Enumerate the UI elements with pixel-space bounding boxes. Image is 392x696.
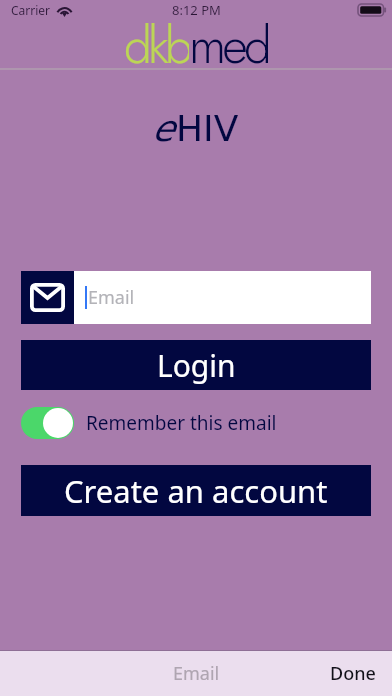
other: Remember this email: [21, 407, 74, 439]
staticText: med: [189, 9, 268, 69]
other: Email: [21, 271, 74, 324]
button[interactable]: Login: [21, 340, 371, 390]
staticText: Email: [88, 285, 135, 310]
button[interactable]: Create an account: [21, 465, 371, 516]
staticText: e: [153, 108, 176, 150]
button[interactable]: Remember this email: [21, 407, 277, 439]
staticText: Create an account: [64, 470, 328, 512]
staticText: Carrier: [11, 2, 51, 18]
button[interactable]: Email: [21, 271, 371, 324]
staticText: dkb: [124, 9, 189, 69]
staticText: 8:12 PM: [172, 1, 221, 19]
staticText: Done: [330, 661, 376, 686]
staticText: Email: [173, 661, 220, 686]
staticText: HIV: [176, 108, 239, 150]
staticText: Remember this email: [86, 410, 277, 436]
staticText: Login: [157, 345, 236, 386]
button[interactable]: Done: [314, 653, 392, 694]
